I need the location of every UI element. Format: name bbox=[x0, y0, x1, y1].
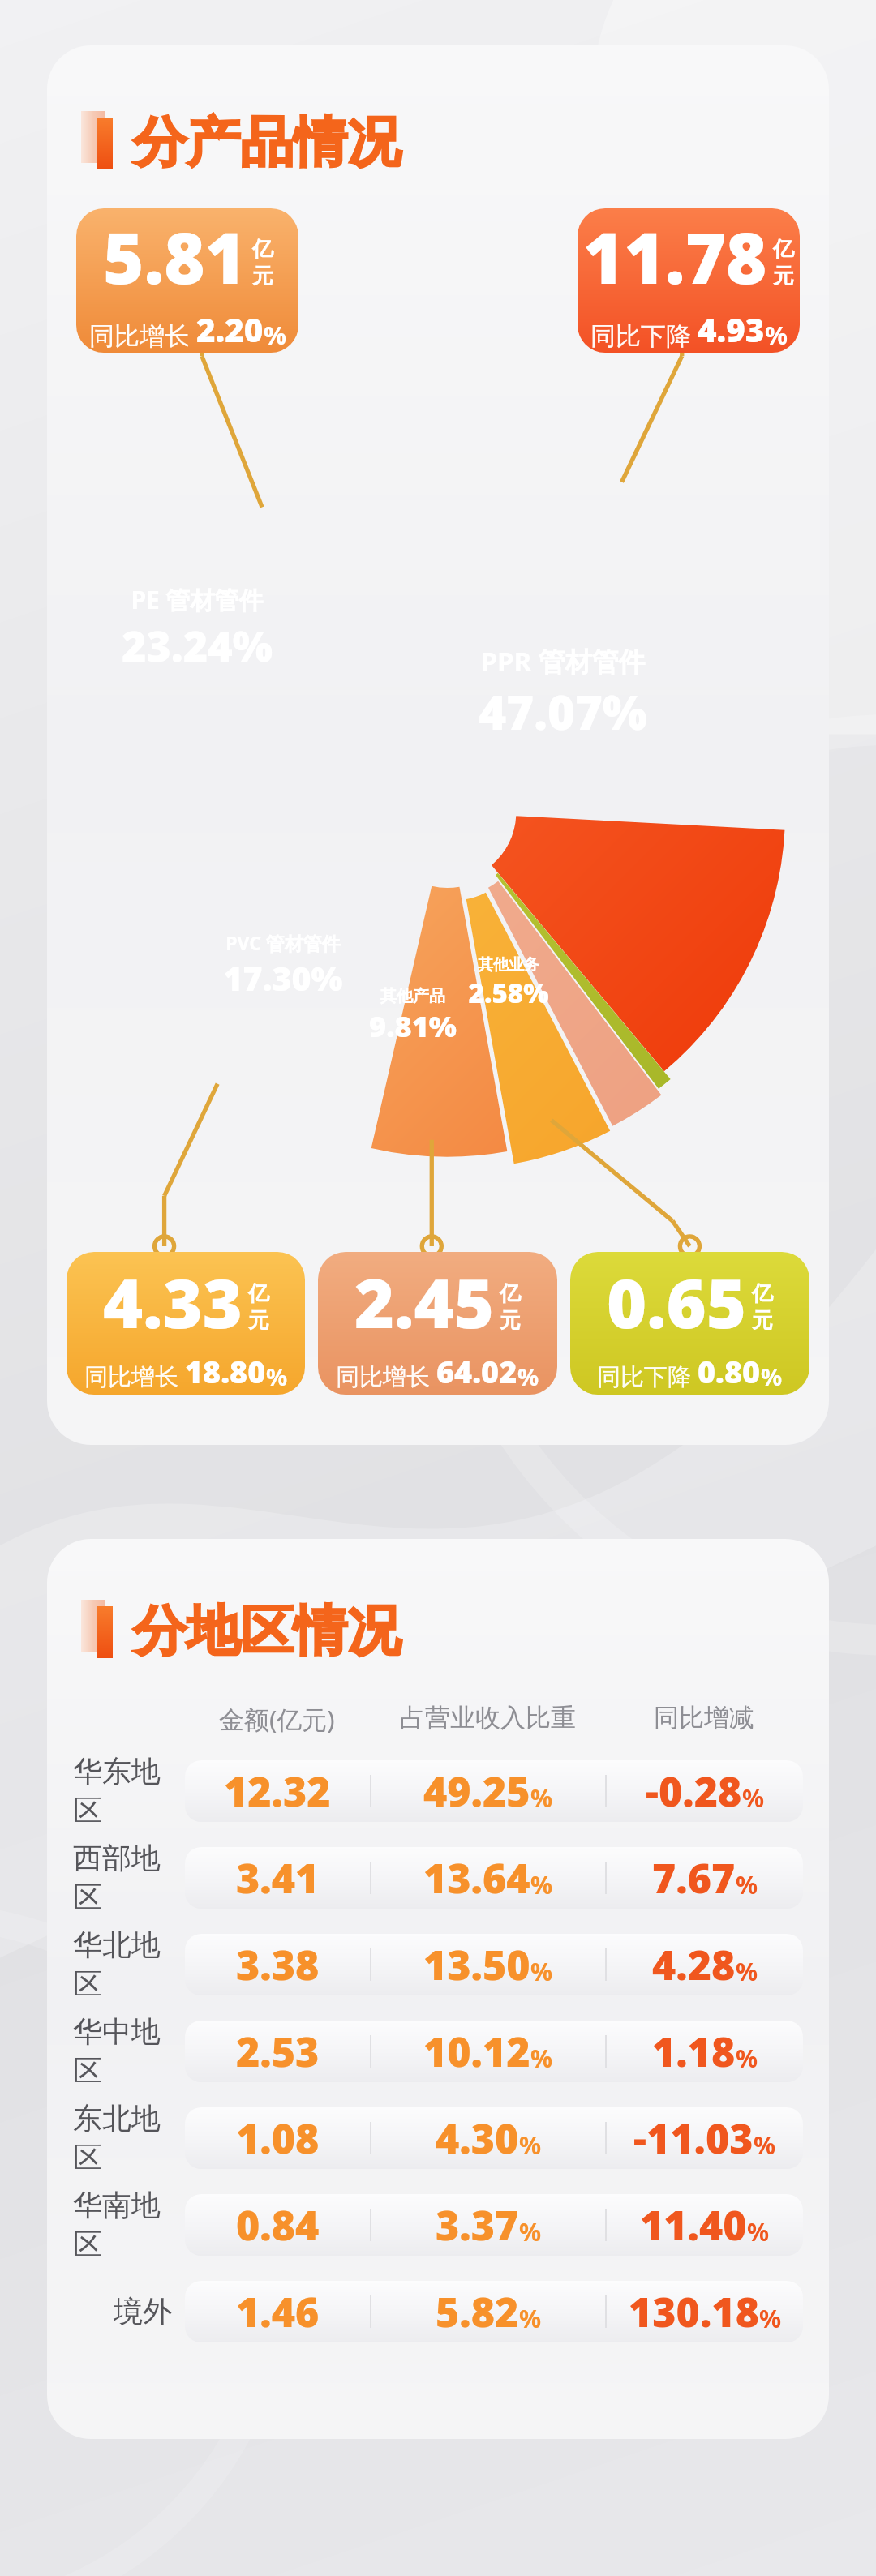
staticText: 元 bbox=[500, 1307, 521, 1334]
staticText: % bbox=[530, 1868, 553, 1901]
button[interactable]: 西部地区 bbox=[73, 1834, 803, 1921]
staticText: 10.12 bbox=[423, 2024, 530, 2079]
staticText: PPR 管材管件 bbox=[462, 643, 664, 679]
staticText: 同比下降 bbox=[597, 1362, 691, 1392]
staticText: 4.33 bbox=[103, 1255, 243, 1348]
staticText: % bbox=[761, 1361, 783, 1392]
staticText: -11.03 bbox=[633, 2111, 754, 2166]
staticText: 1.18 bbox=[652, 2024, 736, 2079]
staticText: 亿 bbox=[773, 236, 794, 263]
staticText: 西部地区 bbox=[73, 1840, 172, 1916]
staticText: 0.84 bbox=[236, 2197, 320, 2252]
button[interactable]: 境外 bbox=[73, 2268, 803, 2355]
staticText: % bbox=[754, 2128, 776, 2162]
button[interactable]: 0.65 bbox=[570, 1252, 809, 1395]
staticText: % bbox=[736, 2042, 758, 2075]
staticText: 49.25 bbox=[423, 1764, 530, 1819]
staticText: 2.45 bbox=[354, 1255, 494, 1348]
staticText: % bbox=[736, 1868, 758, 1901]
staticText: % bbox=[517, 1361, 539, 1392]
staticText: 2.20 bbox=[196, 307, 264, 352]
staticText: 11.40 bbox=[640, 2197, 747, 2252]
staticText: 5.81 bbox=[103, 209, 247, 304]
staticText: 元 bbox=[252, 263, 273, 289]
staticText: 2.53 bbox=[236, 2024, 320, 2079]
staticText: 境外 bbox=[114, 2293, 172, 2330]
staticText: 华中地区 bbox=[73, 2013, 172, 2090]
staticText: 13.50 bbox=[423, 1937, 530, 1992]
staticText: % bbox=[519, 2128, 542, 2162]
staticText: 12.32 bbox=[224, 1764, 331, 1819]
staticText: 同比增长 bbox=[84, 1362, 178, 1392]
staticText: 元 bbox=[248, 1307, 269, 1334]
staticText: 0.65 bbox=[607, 1255, 746, 1348]
staticText: PE 管材管件 bbox=[96, 583, 298, 616]
staticText: % bbox=[530, 1955, 553, 1988]
button[interactable]: 东北地区 bbox=[73, 2094, 803, 2181]
button[interactable]: 华东地区 bbox=[73, 1747, 803, 1834]
staticText: % bbox=[266, 1361, 288, 1392]
staticText: 东北地区 bbox=[73, 2100, 172, 2176]
staticText: 23.24% bbox=[96, 616, 298, 674]
staticText: 3.41 bbox=[236, 1850, 320, 1905]
staticText: 华东地区 bbox=[73, 1753, 172, 1829]
staticText: 亿 bbox=[752, 1280, 773, 1307]
button[interactable]: 5.81 bbox=[76, 208, 298, 353]
button[interactable]: 2.45 bbox=[318, 1252, 557, 1395]
staticText: 9.81% bbox=[311, 1006, 514, 1046]
staticText: 分产品情况 bbox=[133, 109, 401, 176]
staticText: 4.30 bbox=[436, 2111, 519, 2166]
staticText: 13.64 bbox=[423, 1850, 530, 1905]
staticText: 3.38 bbox=[236, 1937, 320, 1992]
staticText: % bbox=[530, 2042, 553, 2075]
staticText: 18.80 bbox=[185, 1351, 266, 1392]
button[interactable]: 11.78 bbox=[578, 208, 800, 353]
staticText: 分地区情况 bbox=[133, 1597, 401, 1665]
staticText: 亿 bbox=[500, 1280, 521, 1307]
staticText: 占营业收入比重 bbox=[400, 1702, 576, 1734]
staticText: 0.80 bbox=[698, 1351, 761, 1392]
staticText: 1.46 bbox=[236, 2284, 320, 2339]
staticText: 1.08 bbox=[236, 2111, 320, 2166]
staticText: 47.07% bbox=[462, 679, 664, 744]
staticText: 64.02 bbox=[436, 1351, 517, 1392]
staticText: -0.28 bbox=[646, 1764, 742, 1819]
staticText: 11.78 bbox=[583, 209, 767, 304]
staticText: 4.93 bbox=[698, 307, 765, 352]
staticText: 17.30% bbox=[182, 955, 384, 1001]
staticText: 7.67 bbox=[652, 1850, 736, 1905]
staticText: 同比下降 bbox=[590, 320, 691, 352]
staticText: 华南地区 bbox=[73, 2187, 172, 2263]
staticText: 同比增长 bbox=[89, 320, 190, 352]
button[interactable]: 4.33 bbox=[67, 1252, 305, 1395]
staticText: PVC 管材管件 bbox=[182, 930, 384, 955]
staticText: % bbox=[759, 2302, 782, 2335]
button[interactable]: 分地区情况 bbox=[81, 1597, 401, 1665]
staticText: % bbox=[736, 1955, 758, 1988]
button[interactable]: 华中地区 bbox=[73, 2008, 803, 2094]
staticText: 华北地区 bbox=[73, 1927, 172, 2003]
staticText: % bbox=[530, 1781, 553, 1815]
staticText: 同比增长 bbox=[336, 1362, 430, 1392]
staticText: 130.18 bbox=[629, 2284, 759, 2339]
staticText: 元 bbox=[752, 1307, 773, 1334]
staticText: % bbox=[765, 318, 788, 352]
staticText: % bbox=[264, 318, 286, 352]
staticText: 其他业务 bbox=[407, 955, 610, 975]
staticText: 元 bbox=[773, 263, 794, 289]
staticText: 亿 bbox=[252, 236, 273, 263]
staticText: 同比增减 bbox=[654, 1702, 754, 1734]
button[interactable]: 分产品情况 bbox=[81, 109, 401, 176]
staticText: 金额(亿元) bbox=[219, 1702, 335, 1736]
staticText: % bbox=[747, 2215, 770, 2248]
button[interactable]: 华北地区 bbox=[73, 1921, 803, 2008]
staticText: 2.58% bbox=[407, 975, 610, 1011]
staticText: 3.37 bbox=[436, 2197, 519, 2252]
staticText: % bbox=[519, 2215, 542, 2248]
staticText: 4.28 bbox=[652, 1937, 736, 1992]
staticText: 亿 bbox=[248, 1280, 269, 1307]
staticText: 其他产品 bbox=[311, 986, 514, 1006]
staticText: % bbox=[742, 1781, 765, 1815]
button[interactable]: 华南地区 bbox=[73, 2181, 803, 2268]
staticText: 5.82 bbox=[436, 2284, 519, 2339]
